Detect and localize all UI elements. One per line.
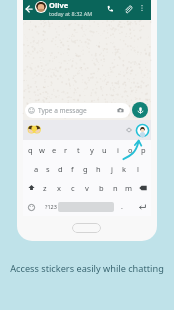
- button[interactable]: s: [42, 159, 54, 178]
- button[interactable]: i: [111, 140, 124, 159]
- staticText: today at 8:32 AM: [49, 10, 93, 17]
- button[interactable]: o: [124, 140, 137, 159]
- staticText: q: [28, 145, 33, 155]
- staticText: g: [83, 164, 88, 174]
- button[interactable]: Emoji keyboard: [25, 201, 37, 213]
- button[interactable]: e: [48, 140, 60, 159]
- staticText: u: [102, 145, 107, 155]
- staticText: .: [121, 202, 123, 212]
- button[interactable]: x: [52, 178, 66, 197]
- staticText: b: [99, 183, 104, 193]
- staticText: w: [39, 145, 45, 155]
- button[interactable]: d: [54, 159, 66, 178]
- button[interactable]: Emoji suggestion: [27, 122, 42, 137]
- button[interactable]: ?123: [44, 197, 57, 216]
- staticText: s: [46, 164, 50, 174]
- button[interactable]: t: [72, 140, 85, 159]
- button[interactable]: c: [66, 178, 80, 197]
- button[interactable]: l: [131, 159, 144, 178]
- button[interactable]: f: [66, 159, 79, 178]
- staticText: Olive: [49, 0, 69, 10]
- button[interactable]: Shift: [24, 178, 38, 197]
- button[interactable]: k: [118, 159, 131, 178]
- staticText: o: [128, 145, 133, 155]
- button[interactable]: Type a message: [25, 103, 130, 118]
- button[interactable]: a: [30, 159, 42, 178]
- button[interactable]: More options: [137, 3, 147, 13]
- button[interactable]: Record voice message: [132, 102, 148, 118]
- staticText: Access stickers easily while chatting: [0, 262, 174, 275]
- staticText: z: [43, 183, 47, 193]
- button[interactable]: j: [105, 159, 118, 178]
- button[interactable]: b: [94, 178, 108, 197]
- staticText: x: [57, 183, 61, 193]
- button[interactable]: u: [98, 140, 111, 159]
- staticText: t: [77, 145, 80, 155]
- button[interactable]: Home: [72, 223, 101, 233]
- staticText: c: [71, 183, 75, 193]
- staticText: n: [113, 183, 118, 193]
- staticText: r: [64, 145, 68, 155]
- staticText: d: [58, 164, 63, 174]
- button[interactable]: Back: [23, 3, 34, 14]
- staticText: i: [117, 145, 119, 155]
- button[interactable]: r: [60, 140, 72, 159]
- staticText: h: [96, 164, 101, 174]
- button[interactable]: Stickers: [124, 125, 134, 135]
- button[interactable]: Avatar stickers: [135, 123, 150, 138]
- button[interactable]: v: [80, 178, 94, 197]
- button[interactable]: Backspace: [136, 178, 150, 197]
- button[interactable]: y: [85, 140, 98, 159]
- button[interactable]: g: [79, 159, 92, 178]
- button[interactable]: p: [137, 140, 150, 159]
- button[interactable]: w: [36, 140, 48, 159]
- button[interactable]: z: [38, 178, 52, 197]
- staticText: v: [85, 183, 89, 193]
- button[interactable]: m: [122, 178, 136, 197]
- button[interactable]: Enter: [137, 201, 148, 212]
- staticText: m: [125, 183, 133, 193]
- button[interactable]: Attach: [122, 3, 133, 14]
- staticText: j: [111, 164, 113, 174]
- staticText: l: [137, 164, 139, 174]
- button[interactable]: Call: [105, 3, 116, 14]
- staticText: e: [52, 145, 57, 155]
- staticText: y: [90, 145, 94, 155]
- staticText: Type a message: [38, 106, 87, 115]
- button[interactable]: .: [117, 197, 126, 216]
- button[interactable]: h: [92, 159, 105, 178]
- staticText: ?123: [45, 203, 57, 210]
- staticText: f: [71, 164, 74, 174]
- button[interactable]: n: [108, 178, 122, 197]
- staticText: k: [122, 164, 127, 174]
- staticText: p: [141, 145, 146, 155]
- button[interactable]: q: [24, 140, 36, 159]
- staticText: a: [34, 164, 39, 174]
